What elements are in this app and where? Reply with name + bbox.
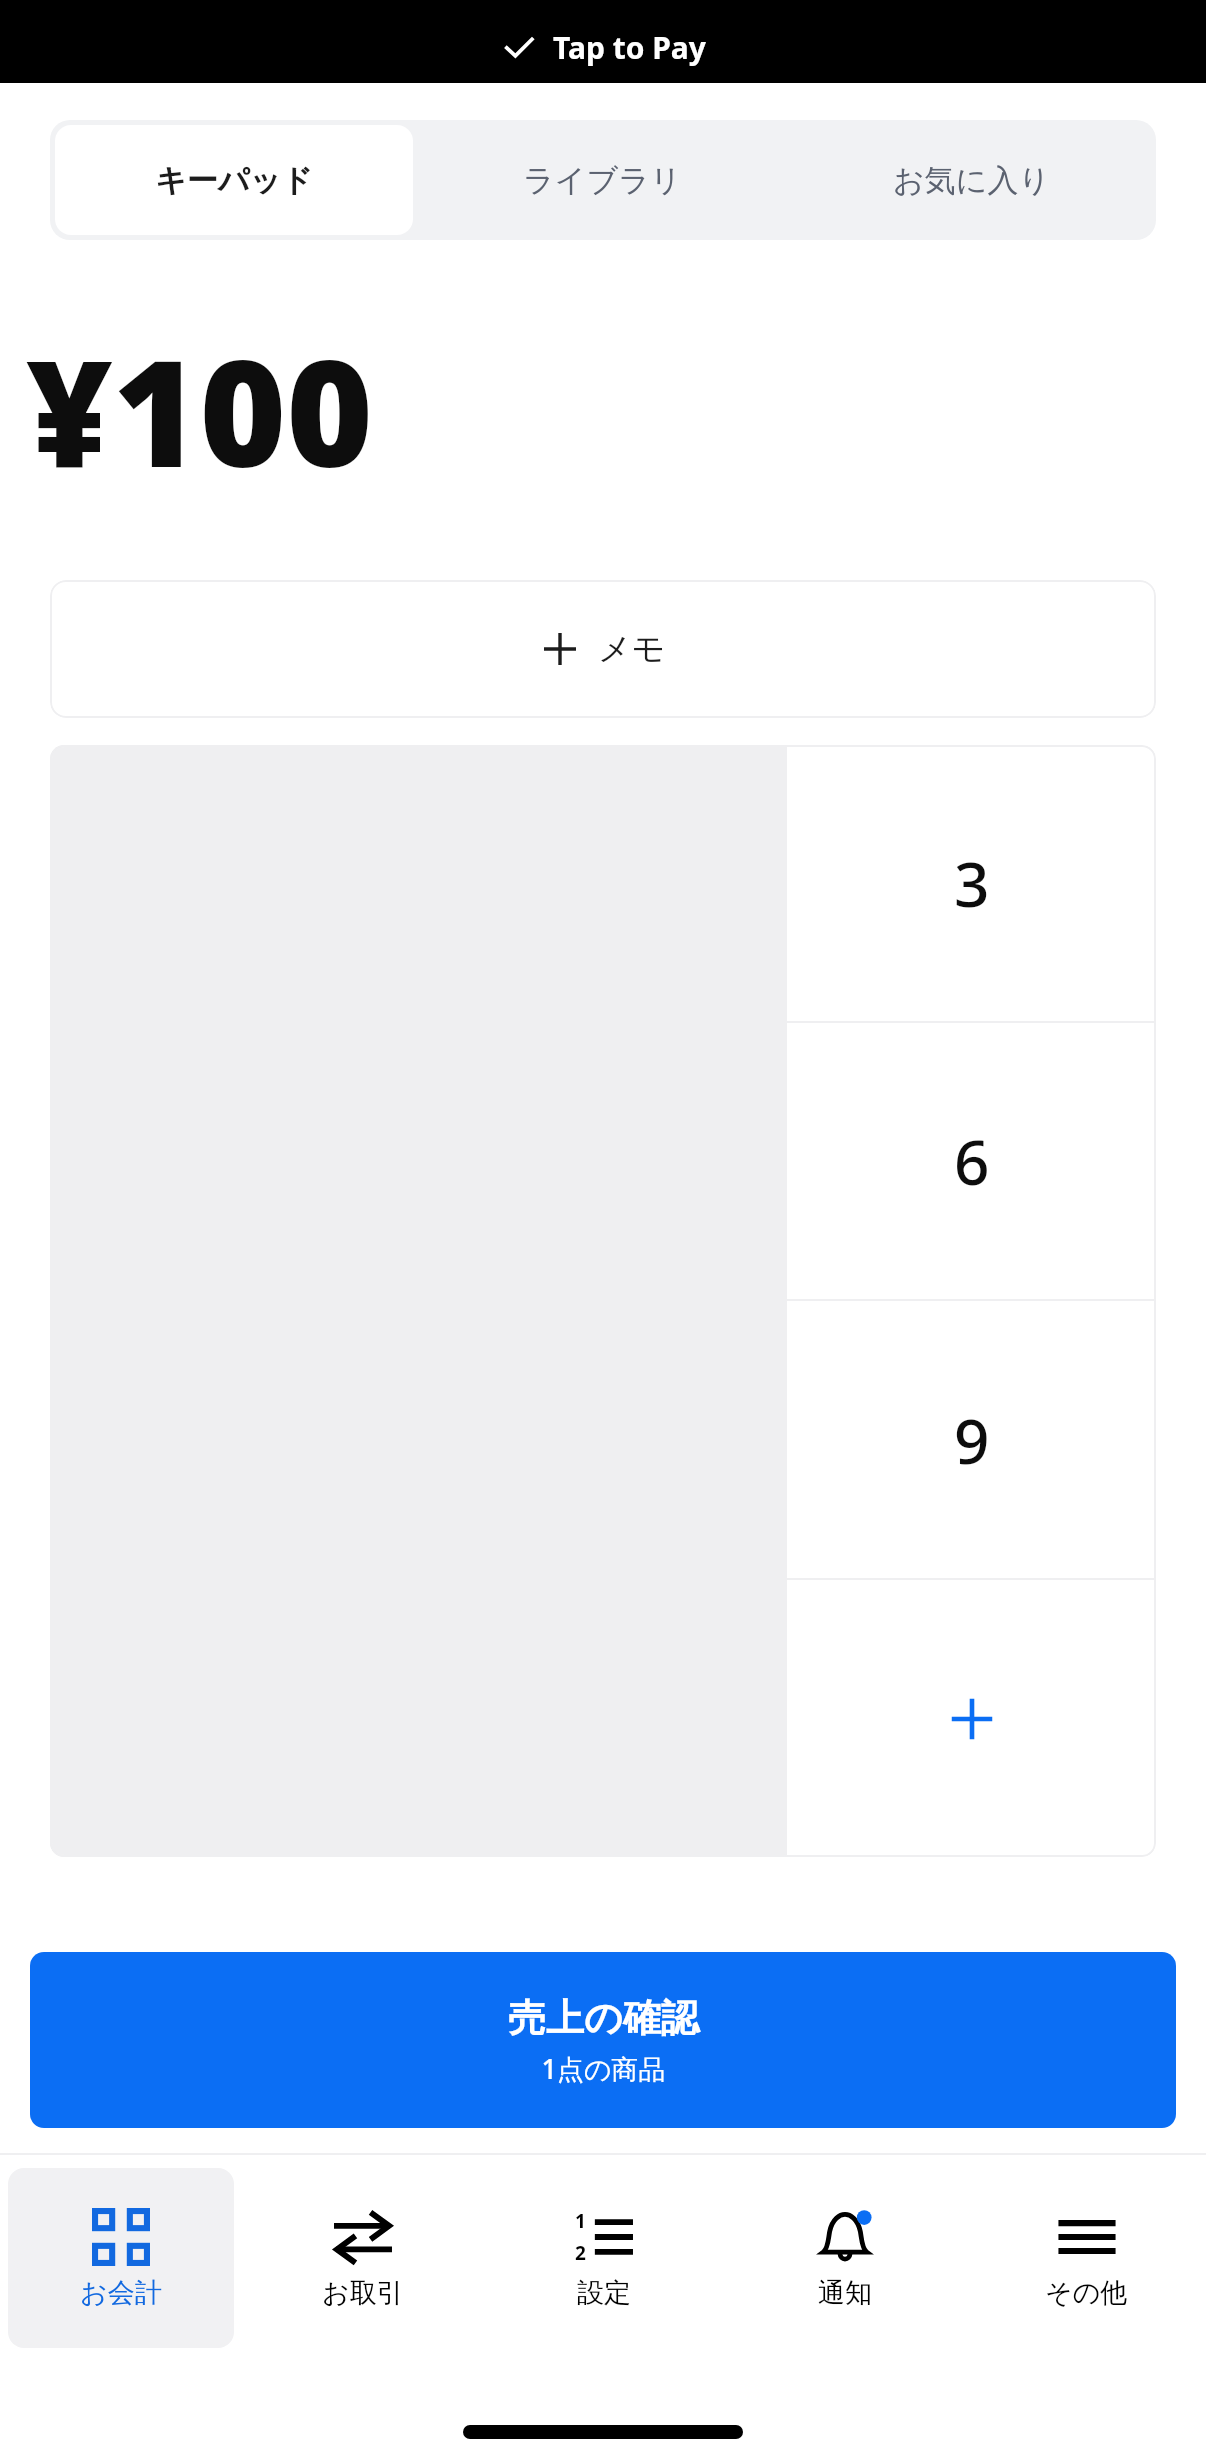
button[interactable]: 通知 (732, 2168, 958, 2348)
button[interactable]: お会計 (8, 2168, 234, 2348)
staticText: キーパッド (155, 161, 313, 200)
button[interactable]: 9 (787, 1301, 1156, 1578)
button[interactable]: メモ (50, 580, 1156, 718)
staticText: 9 (954, 1398, 990, 1482)
button[interactable]: 3 (787, 745, 1156, 1021)
staticText: Tap to Pay (553, 27, 706, 68)
staticText: 設定 (577, 2276, 631, 2310)
button[interactable]: その他 (973, 2168, 1199, 2348)
button[interactable]: 売上の確認 (30, 1952, 1176, 2128)
button[interactable]: お気に入り (787, 120, 1156, 240)
button[interactable]: キーパッド (55, 125, 413, 235)
staticText: お会計 (80, 2276, 162, 2310)
other: Add (787, 1580, 1156, 1857)
button[interactable]: ライブラリ (418, 120, 787, 240)
staticText: ライブラリ (523, 161, 682, 200)
staticText: 1点の商品 (541, 2050, 666, 2087)
staticText: 1 (575, 2208, 586, 2234)
staticText: ¥100 (26, 309, 373, 511)
staticText: 通知 (818, 2276, 872, 2310)
staticText: メモ (598, 628, 666, 670)
staticText: その他 (1045, 2276, 1128, 2310)
staticText: 売上の確認 (508, 1994, 699, 2042)
staticText: お取引 (322, 2276, 404, 2310)
staticText: 2 (575, 2240, 586, 2266)
staticText: 3 (954, 841, 990, 925)
button[interactable]: 1 (491, 2168, 717, 2348)
staticText: お気に入り (893, 161, 1051, 200)
staticText: 6 (954, 1119, 990, 1203)
button[interactable]: 6 (787, 1023, 1156, 1299)
button[interactable]: Add (787, 1580, 1156, 1857)
button[interactable]: お取引 (250, 2168, 476, 2348)
